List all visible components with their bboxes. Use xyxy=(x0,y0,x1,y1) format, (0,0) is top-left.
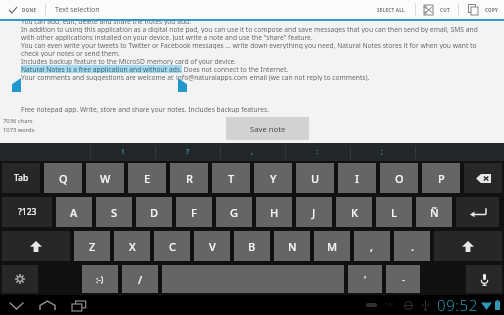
staticText: D xyxy=(150,205,159,220)
button[interactable]: Q xyxy=(44,163,82,193)
button[interactable]: Keyboard settings xyxy=(2,265,38,293)
button[interactable]: . xyxy=(394,231,430,261)
staticText: ?123 xyxy=(18,206,37,218)
staticText: You can even write your tweets to Twitte… xyxy=(21,41,477,49)
button[interactable]: W xyxy=(86,163,124,193)
button[interactable]: Enter xyxy=(456,197,499,227)
button[interactable]: / xyxy=(122,265,158,293)
button[interactable]: J xyxy=(296,197,332,227)
button[interactable]: , xyxy=(354,231,390,261)
staticText: ? xyxy=(186,147,190,157)
staticText: Natural Notes is a free application and … xyxy=(21,65,182,73)
button[interactable]: E xyxy=(128,163,166,193)
button[interactable]: F xyxy=(176,197,212,227)
staticText: J xyxy=(312,205,316,220)
button[interactable]: Ñ xyxy=(416,197,452,227)
button[interactable]: D xyxy=(136,197,172,227)
button[interactable]: Recent apps xyxy=(69,296,88,315)
staticText: 09:52 xyxy=(437,295,478,315)
button[interactable]: C xyxy=(154,231,190,261)
staticText: I xyxy=(355,171,359,186)
button[interactable]: Shift xyxy=(2,231,70,261)
button[interactable]: Backspace xyxy=(464,163,502,193)
button[interactable]: - xyxy=(386,265,420,293)
staticText: Save note xyxy=(250,124,286,134)
staticText: P xyxy=(438,171,445,186)
button[interactable]: : xyxy=(285,143,349,161)
staticText: 7036 chars xyxy=(3,117,33,125)
button[interactable]: ! xyxy=(91,143,155,161)
staticText: K xyxy=(351,205,358,220)
staticText: email (we can not reply to comments). xyxy=(248,73,370,81)
button[interactable]: Save note xyxy=(226,117,309,140)
other: Copy xyxy=(468,4,479,16)
staticText: info@naturalapps.com xyxy=(176,73,248,81)
staticText: V xyxy=(209,239,216,254)
button[interactable]: K xyxy=(336,197,372,227)
button[interactable]: T xyxy=(212,163,250,193)
staticText: W xyxy=(100,171,111,186)
staticText: Y xyxy=(270,171,277,186)
button[interactable]: N xyxy=(274,231,310,261)
button[interactable]: Voice input xyxy=(466,265,502,293)
button[interactable]: I xyxy=(338,163,376,193)
button[interactable]: :-) xyxy=(82,265,118,293)
staticText: , xyxy=(370,239,374,254)
staticText: . xyxy=(411,239,414,254)
button[interactable]: ; xyxy=(350,143,414,161)
button[interactable]: V xyxy=(194,231,230,261)
button[interactable]: Hide keyboard xyxy=(7,296,26,315)
button[interactable]: Tab xyxy=(2,163,40,193)
staticText: 15° xyxy=(385,301,395,309)
staticText: R xyxy=(186,171,193,186)
button[interactable]: A xyxy=(56,197,92,227)
button[interactable]: SELECT ALL xyxy=(369,0,415,19)
button[interactable]: G xyxy=(216,197,252,227)
button[interactable]: M xyxy=(314,231,350,261)
staticText: M xyxy=(327,239,338,254)
staticText: COPY xyxy=(485,7,499,13)
staticText: ' xyxy=(364,273,367,285)
staticText: In addition to using this application as… xyxy=(21,25,478,33)
staticText: , xyxy=(251,147,253,157)
button[interactable]: X xyxy=(114,231,150,261)
staticText: Tab xyxy=(14,172,29,184)
staticText: B xyxy=(248,239,256,254)
staticText: Does not connect to the Internet. xyxy=(182,65,289,73)
button[interactable]: , xyxy=(220,143,284,161)
staticText: with other applications installed on you… xyxy=(21,33,313,41)
button[interactable]: ' xyxy=(348,265,382,293)
staticText: SELECT ALL xyxy=(377,7,405,13)
button[interactable]: ? xyxy=(156,143,220,161)
button[interactable]: Home xyxy=(38,296,57,315)
staticText: You can add, edit, delete and share the … xyxy=(21,21,191,25)
button[interactable]: Z xyxy=(74,231,110,261)
staticText: :-) xyxy=(96,274,104,285)
button[interactable]: H xyxy=(256,197,292,227)
button[interactable]: B xyxy=(234,231,270,261)
button[interactable]: O xyxy=(380,163,418,193)
staticText: ; xyxy=(381,147,383,157)
staticText: Z xyxy=(89,239,96,254)
button[interactable]: U xyxy=(296,163,334,193)
button[interactable]: Copy xyxy=(459,0,504,19)
staticText: CUT xyxy=(440,7,450,13)
staticText: N xyxy=(288,239,297,254)
button[interactable]: P xyxy=(422,163,460,193)
button[interactable]: Shift xyxy=(434,231,502,261)
button[interactable]: DONE xyxy=(0,0,45,19)
button[interactable]: S xyxy=(96,197,132,227)
staticText: U xyxy=(311,171,320,186)
staticText: O xyxy=(395,171,404,186)
staticText: 1073 words xyxy=(3,126,35,134)
button[interactable]: Y xyxy=(254,163,292,193)
staticText: Free notepad app. Write, store and share… xyxy=(21,105,269,113)
button[interactable]: L xyxy=(376,197,412,227)
button[interactable]: R xyxy=(170,163,208,193)
staticText: ! xyxy=(122,147,124,157)
staticText: DONE xyxy=(22,7,37,13)
staticText: : xyxy=(316,147,318,157)
button[interactable]: ?123 xyxy=(2,197,52,227)
button[interactable]: Cut xyxy=(416,0,458,19)
